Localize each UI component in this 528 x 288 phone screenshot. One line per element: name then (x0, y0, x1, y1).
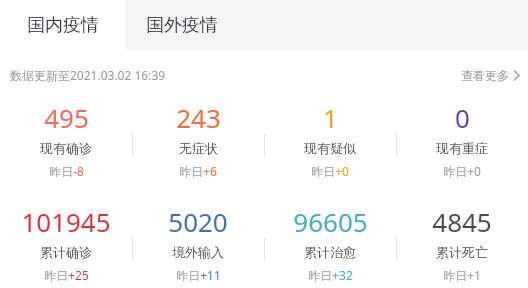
button[interactable]: 96605 (264, 204, 396, 283)
staticText: 96605 (293, 204, 368, 239)
staticText: 累计治愈 (304, 244, 356, 260)
button[interactable]: 国内疫情 (0, 0, 125, 50)
staticText: 无症状 (179, 140, 218, 156)
staticText: 昨日+0 (311, 163, 349, 179)
button[interactable]: 243 (132, 100, 264, 179)
staticText: 495 (44, 100, 89, 135)
staticText: 昨日+6 (179, 163, 217, 179)
staticText: 昨日-8 (49, 163, 84, 179)
staticText: 昨日+11 (176, 267, 221, 283)
button[interactable]: 1 (264, 100, 396, 179)
staticText: 查看更多 (461, 68, 509, 83)
button[interactable]: 5020 (132, 204, 264, 283)
button[interactable]: 4845 (396, 204, 528, 283)
staticText: 5020 (168, 204, 228, 239)
staticText: 1 (323, 100, 338, 135)
button[interactable]: 101945 (0, 204, 132, 283)
staticText: 昨日+25 (44, 267, 89, 283)
button[interactable]: 国外疫情 (125, 0, 528, 50)
staticText: 101945 (21, 204, 111, 239)
staticText: 国外疫情 (146, 14, 218, 37)
button[interactable]: 查看更多 (461, 68, 519, 83)
staticText: 累计确诊 (40, 244, 92, 260)
staticText: 昨日+0 (443, 163, 481, 179)
staticText: 4845 (432, 204, 492, 239)
button[interactable]: 0 (396, 100, 528, 179)
staticText: 243 (176, 100, 221, 135)
staticText: 国内疫情 (27, 14, 99, 37)
button[interactable]: 495 (0, 100, 132, 179)
staticText: 现有确诊 (40, 140, 92, 156)
staticText: 昨日+1 (443, 267, 481, 283)
staticText: 昨日+32 (308, 267, 353, 283)
staticText: 现有疑似 (304, 140, 356, 156)
staticText: 累计死亡 (436, 244, 488, 260)
staticText: 0 (455, 100, 470, 135)
staticText: 数据更新至2021.03.02 16:39 (10, 67, 166, 83)
staticText: 境外输入 (172, 244, 224, 260)
staticText: 现有重症 (436, 140, 488, 156)
